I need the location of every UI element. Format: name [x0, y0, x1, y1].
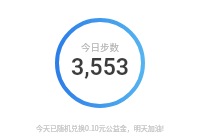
other: Step progress ring: [55, 18, 145, 108]
staticText: 3,553: [0, 54, 200, 81]
staticText: 今日步数: [0, 40, 200, 54]
staticText: 今天已随机兑换0.10元公益金，明天加油!: [0, 123, 200, 133]
